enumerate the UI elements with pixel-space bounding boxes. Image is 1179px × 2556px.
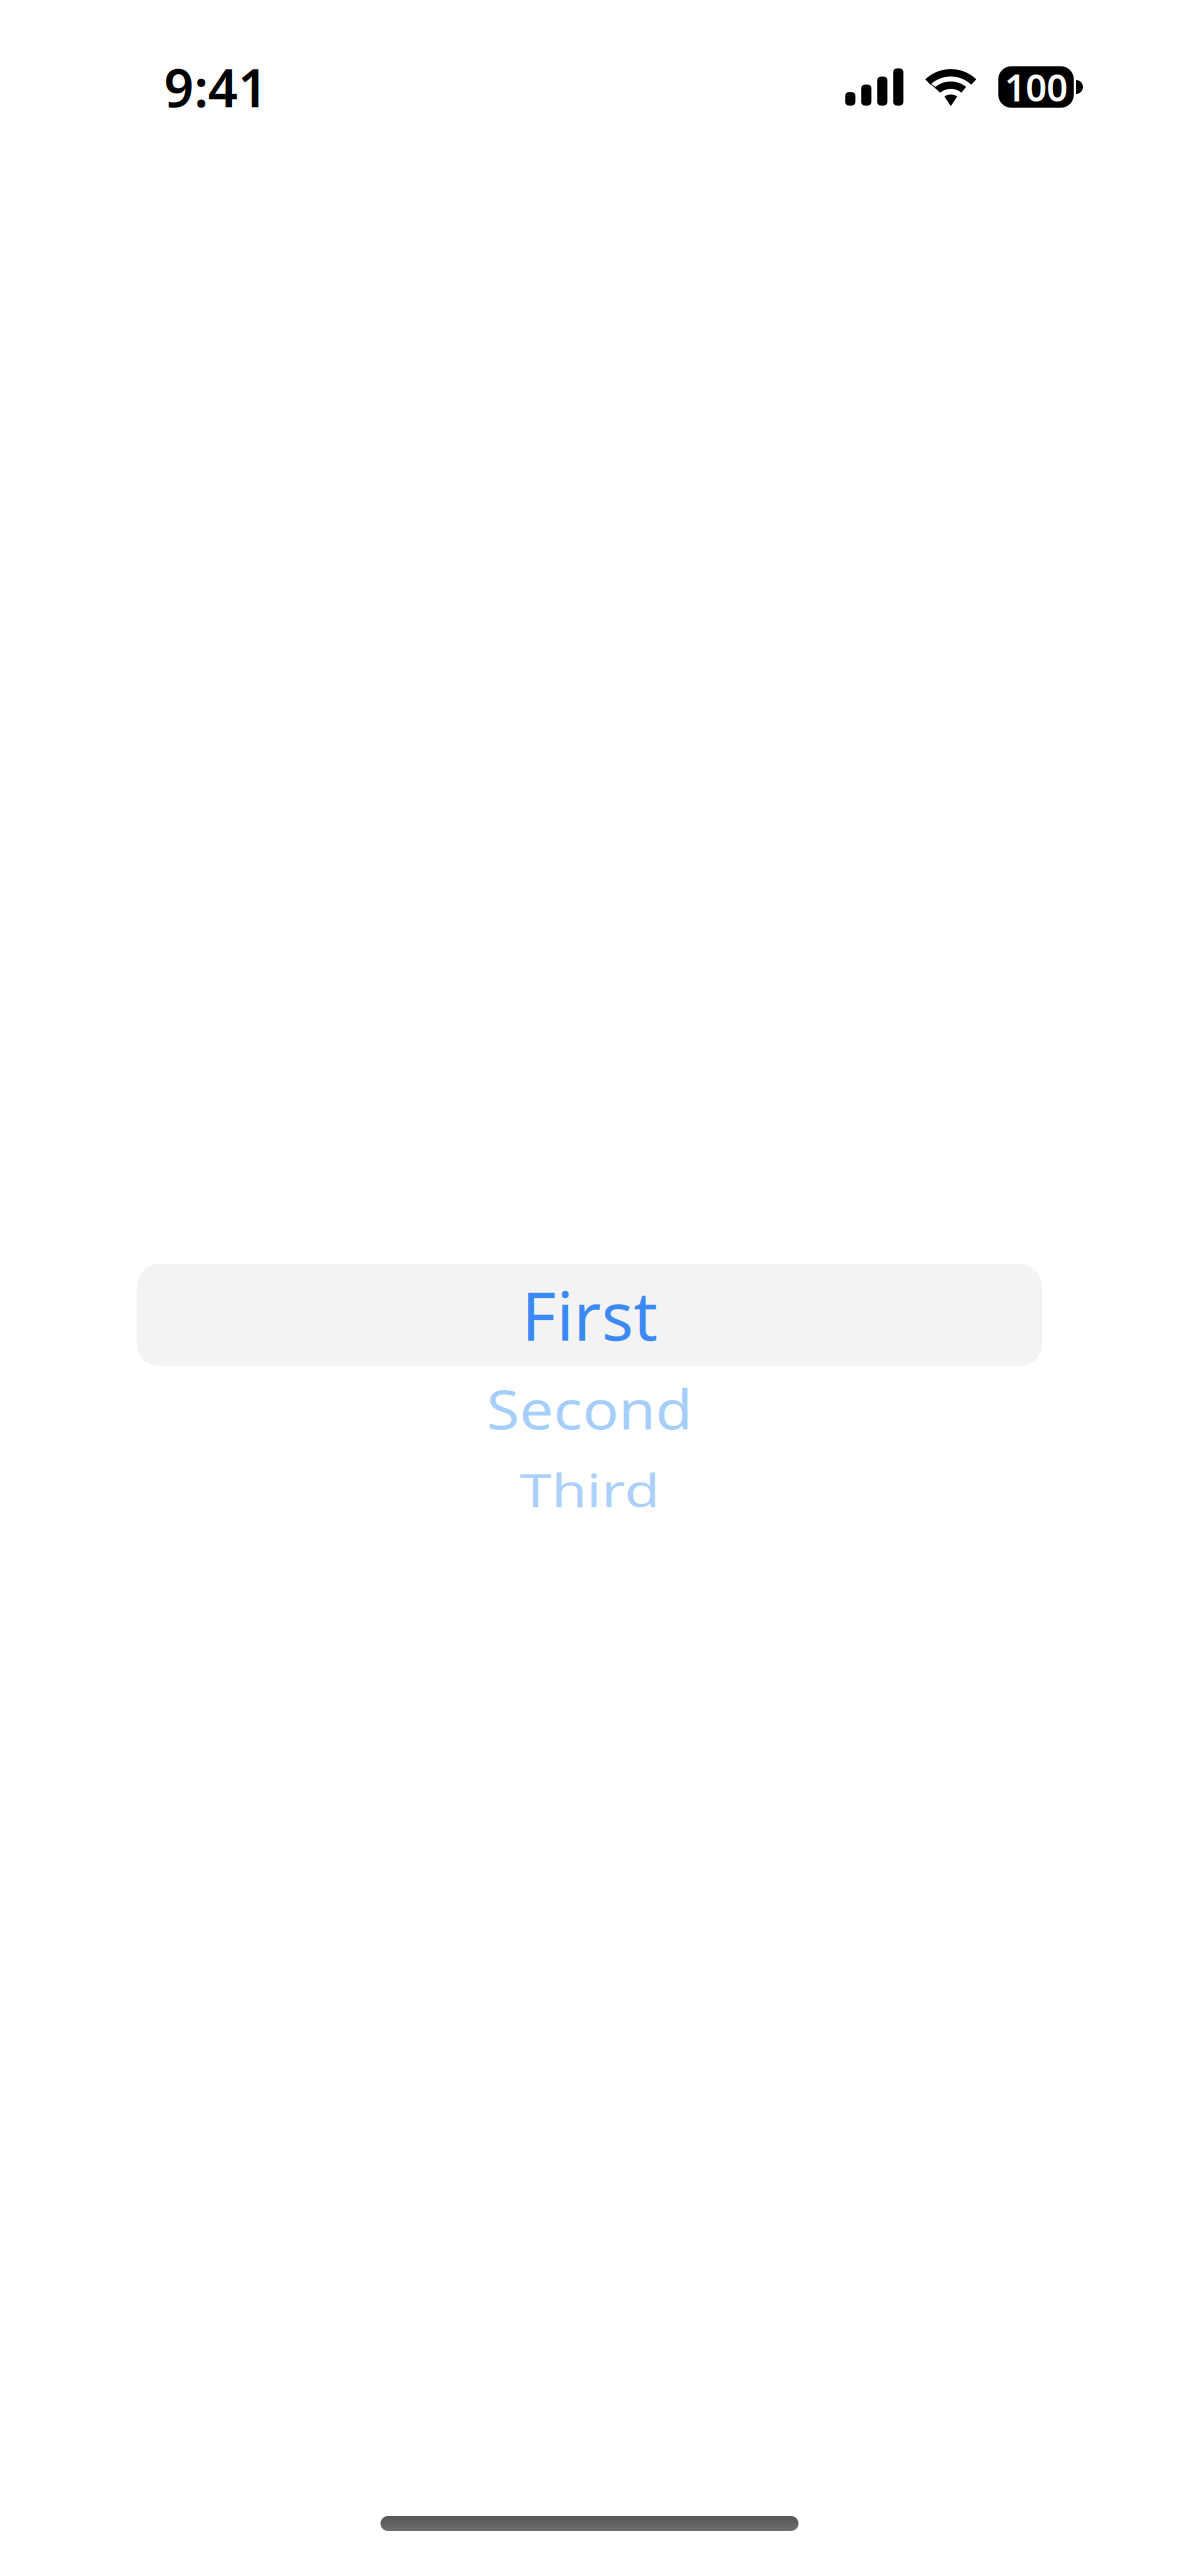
staticText: First xyxy=(521,1271,657,1359)
staticText: 100 xyxy=(1004,62,1067,112)
button[interactable]: Third xyxy=(137,1451,1042,1529)
staticText: 9:41 xyxy=(164,52,268,122)
staticText: Second xyxy=(486,1369,692,1448)
staticText: Third xyxy=(519,1452,659,1528)
button[interactable]: Second xyxy=(137,1366,1042,1451)
button[interactable]: First xyxy=(137,1264,1042,1366)
